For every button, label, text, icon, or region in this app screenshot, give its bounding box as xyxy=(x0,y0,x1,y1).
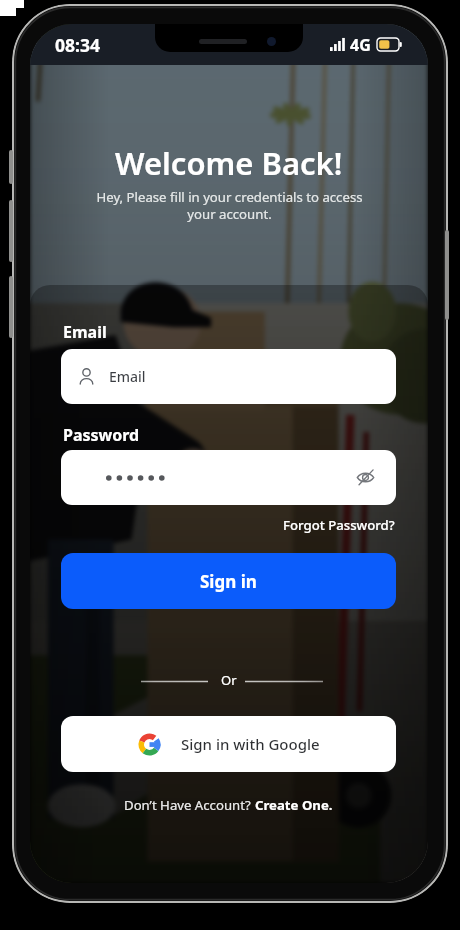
staticText: 08:34 xyxy=(55,33,100,57)
staticText: Forgot Password? xyxy=(283,516,395,534)
staticText: 4G xyxy=(350,34,371,56)
button[interactable]: Create One. xyxy=(255,796,333,814)
staticText: Email xyxy=(109,367,146,386)
staticText: Sign in xyxy=(200,570,257,593)
button[interactable]: Email xyxy=(61,349,396,404)
button[interactable]: Sign in xyxy=(61,553,396,609)
staticText: Welcome Back! xyxy=(115,142,343,184)
staticText: Email xyxy=(63,321,107,343)
button[interactable]: Forgot Password? xyxy=(282,514,396,536)
staticText: Or xyxy=(221,671,237,689)
button[interactable]: Show password xyxy=(61,450,396,505)
button[interactable]: Sign in with Google xyxy=(61,716,396,772)
button[interactable]: Show password xyxy=(356,468,375,487)
staticText: Hey, Please fill in your credentials to … xyxy=(96,188,363,222)
staticText: Password xyxy=(63,424,140,446)
staticText: Sign in with Google xyxy=(181,734,320,754)
staticText: Don’t Have Account? xyxy=(124,796,255,814)
staticText: Create One. xyxy=(255,796,333,814)
